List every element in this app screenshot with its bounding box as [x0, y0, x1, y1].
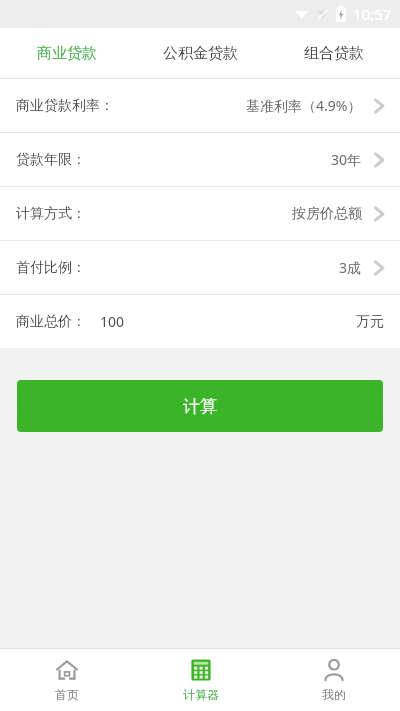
staticText: 计算器 [183, 687, 219, 702]
staticText: 商业贷款 [37, 44, 97, 63]
staticText: 按房价总额 [292, 205, 362, 223]
staticText: 商业贷款利率： [16, 97, 114, 115]
button[interactable]: 计算器 [134, 649, 267, 711]
staticText: 首页 [55, 687, 79, 702]
button[interactable]: 首付比例： [0, 241, 400, 294]
button[interactable]: 贷款年限： [0, 133, 400, 186]
button[interactable]: 计算方式： [0, 187, 400, 240]
staticText: 30年 [331, 150, 362, 169]
staticText: 贷款年限： [16, 151, 86, 169]
staticText: 计算方式： [16, 205, 86, 223]
staticText: 商业总价： [16, 313, 86, 331]
staticText: 基准利率（4.9%） [246, 96, 362, 115]
staticText: 3成 [339, 258, 362, 277]
button[interactable]: 我的 [267, 649, 400, 711]
button[interactable]: 公积金贷款 [134, 28, 267, 78]
staticText: 万元 [356, 313, 384, 331]
staticText: 我的 [322, 687, 346, 702]
button[interactable]: 商业总价： [0, 295, 400, 348]
staticText: 公积金贷款 [163, 44, 238, 63]
staticText: 100 [100, 312, 125, 331]
button[interactable]: 计算 [17, 380, 383, 432]
staticText: 计算 [183, 396, 217, 417]
button[interactable]: 首页 [0, 649, 134, 711]
button[interactable]: 商业贷款 [0, 28, 134, 78]
button[interactable]: 组合贷款 [267, 28, 400, 78]
staticText: 10:57 [353, 4, 392, 24]
staticText: 首付比例： [16, 259, 86, 277]
button[interactable]: 商业贷款利率： [0, 79, 400, 132]
staticText: 组合贷款 [304, 44, 364, 63]
